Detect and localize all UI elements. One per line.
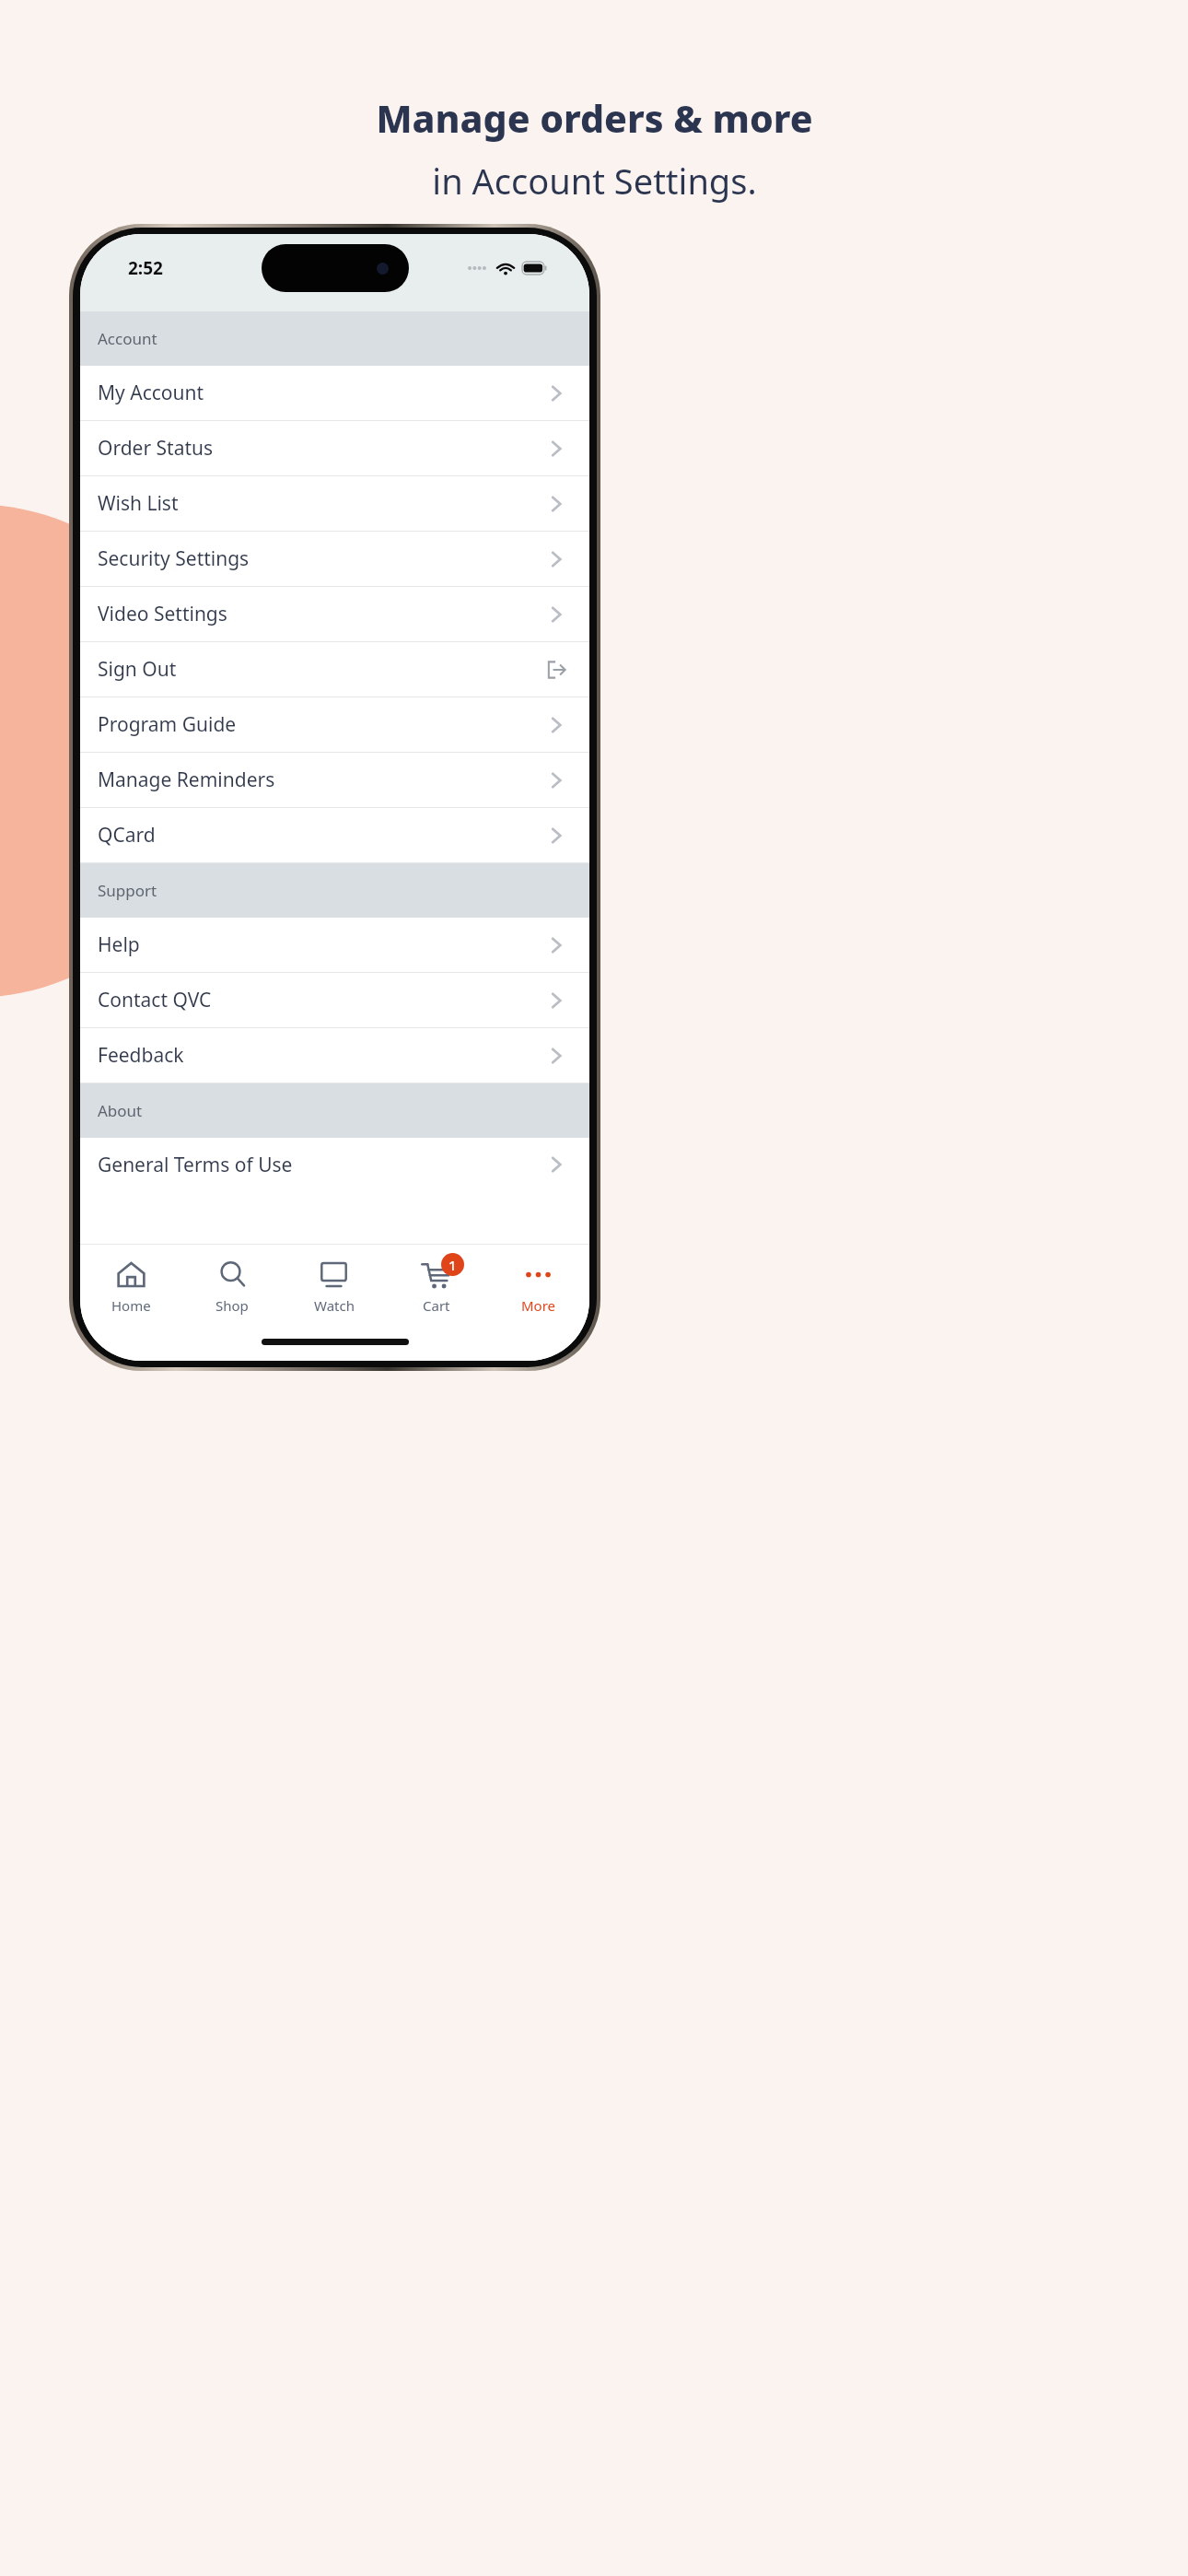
- staticText: Support: [98, 880, 157, 901]
- button[interactable]: Help: [80, 918, 589, 973]
- staticText: More: [521, 1296, 556, 1315]
- button[interactable]: Feedback: [80, 1028, 589, 1083]
- button[interactable]: 1: [385, 1245, 487, 1329]
- staticText: Sign Out: [98, 656, 177, 683]
- staticText: About: [98, 1100, 143, 1121]
- staticText: Help: [98, 931, 140, 958]
- button[interactable]: Wish List: [80, 476, 589, 532]
- button[interactable]: General Terms of Use: [80, 1138, 589, 1191]
- button[interactable]: Security Settings: [80, 532, 589, 587]
- staticText: General Terms of Use: [98, 1152, 293, 1178]
- staticText: Shop: [215, 1296, 249, 1315]
- staticText: Security Settings: [98, 545, 250, 572]
- staticText: Home: [111, 1296, 151, 1315]
- staticText: Program Guide: [98, 711, 237, 738]
- button[interactable]: Watch: [283, 1245, 385, 1329]
- staticText: Watch: [314, 1296, 355, 1315]
- button[interactable]: QCard: [80, 808, 589, 863]
- button[interactable]: Program Guide: [80, 697, 589, 753]
- button[interactable]: Video Settings: [80, 587, 589, 642]
- staticText: Cart: [423, 1296, 450, 1315]
- staticText: QCard: [98, 822, 156, 849]
- staticText: Account: [98, 328, 157, 349]
- staticText: Video Settings: [98, 601, 227, 627]
- staticText: 2:52: [128, 256, 163, 280]
- button[interactable]: Home: [80, 1245, 181, 1329]
- button[interactable]: Order Status: [80, 421, 589, 476]
- button[interactable]: Sign Out: [80, 642, 589, 697]
- button[interactable]: More: [487, 1245, 589, 1329]
- button[interactable]: Shop: [181, 1245, 283, 1329]
- button[interactable]: My Account: [80, 366, 589, 421]
- staticText: Order Status: [98, 435, 214, 462]
- staticText: Wish List: [98, 490, 179, 517]
- button[interactable]: Manage Reminders: [80, 753, 589, 808]
- staticText: Manage orders & more: [376, 92, 813, 144]
- staticText: in Account Settings.: [432, 157, 757, 205]
- staticText: Feedback: [98, 1042, 184, 1069]
- button[interactable]: Contact QVC: [80, 973, 589, 1028]
- staticText: Manage Reminders: [98, 767, 275, 793]
- staticText: My Account: [98, 380, 204, 406]
- staticText: Contact QVC: [98, 987, 212, 1013]
- staticText: 1: [448, 1256, 457, 1274]
